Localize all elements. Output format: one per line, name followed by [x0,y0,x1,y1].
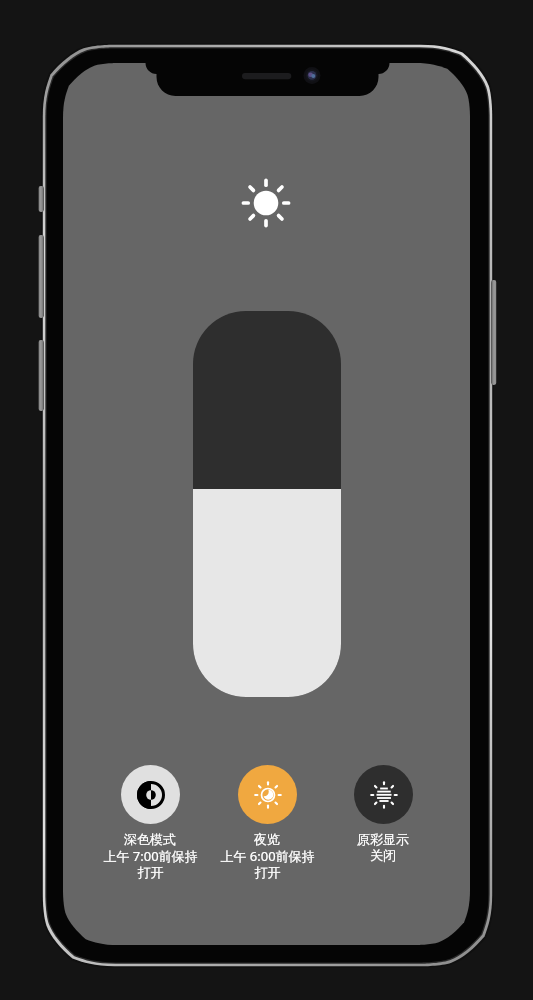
staticText: 原彩显示 [357,831,409,847]
button[interactable]: Night Shift [211,765,323,881]
staticText: 夜览 [254,831,280,847]
button[interactable]: Dark Mode [94,765,206,881]
staticText: 深色模式 [124,831,176,847]
staticText: 上午 7:00前保持 打开 [103,847,198,881]
button[interactable]: True Tone [327,765,439,863]
staticText: 关闭 [370,847,396,863]
button[interactable] [193,311,341,697]
staticText: 上午 6:00前保持 打开 [220,847,315,881]
